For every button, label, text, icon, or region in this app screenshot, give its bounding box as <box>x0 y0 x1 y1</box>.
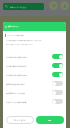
button[interactable]: Disabled <box>52 81 63 86</box>
staticText: 通信状態のユーザー通知 <box>6 92 51 94</box>
button[interactable]: OK <box>36 116 64 124</box>
staticText: 検索キーワードを入力 <box>10 6 27 8</box>
button[interactable]: 計測デバイスの接続を編集 <box>3 97 66 106</box>
button[interactable]: Search <box>3 3 44 10</box>
button[interactable]: その他の設定を接続に使用 <box>3 52 66 61</box>
button[interactable]: キャンセル <box>6 116 34 124</box>
button[interactable]: Account <box>60 1 69 10</box>
staticText: キャンセル <box>14 119 26 122</box>
button[interactable]: その他の設定を接続に使用 <box>3 70 66 79</box>
staticText: この設定を変更すると接続時の動作が変わることがあります。 詳しい内容についてはヘ… <box>6 40 43 45</box>
staticText: OK <box>48 119 52 122</box>
button[interactable]: Notifications <box>49 1 58 10</box>
button[interactable]: Enabled <box>52 54 63 59</box>
button[interactable]: Enabled <box>52 63 63 68</box>
staticText: 接続時の認証設定を表示 <box>6 83 51 85</box>
button[interactable]: Disabled <box>52 99 63 104</box>
staticText: 計測デバイスの接続を編集 <box>6 101 51 103</box>
button[interactable]: Enabled <box>52 72 63 77</box>
staticText: その他の接続方法を利用可 <box>6 65 51 67</box>
button[interactable]: 接続時の認証設定を表示 <box>3 79 66 88</box>
button[interactable]: その他の接続方法を利用可 <box>3 61 66 70</box>
button[interactable]: Disabled <box>52 90 63 95</box>
button[interactable]: 通信状態のユーザー通知 <box>3 88 66 97</box>
staticText: ウェブサイト接続を確認 <box>7 35 24 37</box>
staticText: その他の設定を接続に使用 <box>6 74 51 76</box>
staticText: その他の設定を接続に使用 <box>6 56 51 58</box>
staticText: 接続オプション <box>8 26 19 28</box>
